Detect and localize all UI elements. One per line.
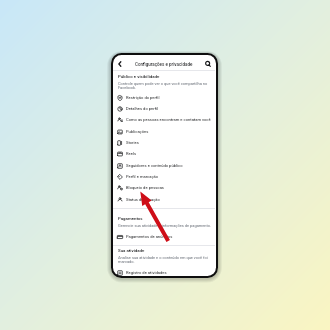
button[interactable]: Perfil e marcação: [113, 171, 215, 182]
staticText: Seguidores e conteúdo público: [126, 163, 183, 168]
staticText: Stories: [126, 140, 139, 145]
staticText: Controle quem pode ver o que você compar…: [118, 81, 213, 90]
staticText: Registro de atividades: [126, 270, 167, 275]
staticText: Como as pessoas encontram e contatam voc…: [126, 117, 211, 122]
button[interactable]: Publicações: [113, 126, 215, 137]
staticText: Pagamentos de anúncios: [126, 234, 173, 239]
button[interactable]: Detalhes do perfil: [113, 103, 215, 114]
staticText: Sua atividade: [118, 248, 145, 253]
button[interactable]: Status de ativação: [113, 194, 215, 205]
button[interactable]: Pesquisar: [204, 60, 212, 68]
staticText: Detalhes do perfil: [126, 106, 159, 111]
staticText: Configurações e privacidade: [135, 62, 193, 67]
staticText: Pagamentos: [118, 216, 143, 221]
staticText: Restrição do perfil: [126, 95, 160, 100]
staticText: Perfil e marcação: [126, 174, 159, 179]
staticText: Gerencie sua atividade e informações de …: [118, 223, 212, 228]
button[interactable]: Como as pessoas encontram e contatam voc…: [113, 114, 215, 125]
button[interactable]: Registro de atividades: [113, 267, 215, 278]
button[interactable]: Pagamentos de anúncios: [113, 231, 215, 242]
staticText: Publicações: [126, 129, 149, 134]
button[interactable]: Seguidores e conteúdo público: [113, 160, 215, 171]
staticText: Público e visibilidade: [118, 74, 160, 79]
staticText: Status de ativação: [126, 197, 160, 202]
button[interactable]: Voltar: [116, 60, 124, 68]
staticText: Analise sua atividade e o conteúdo em qu…: [118, 255, 213, 264]
staticText: Reels: [126, 151, 137, 156]
button[interactable]: Bloqueio de pessoas: [113, 182, 215, 193]
button[interactable]: Restrição do perfil: [113, 92, 215, 103]
staticText: Bloqueio de pessoas: [126, 185, 164, 190]
button[interactable]: Reels: [113, 148, 215, 159]
button[interactable]: Stories: [113, 137, 215, 148]
